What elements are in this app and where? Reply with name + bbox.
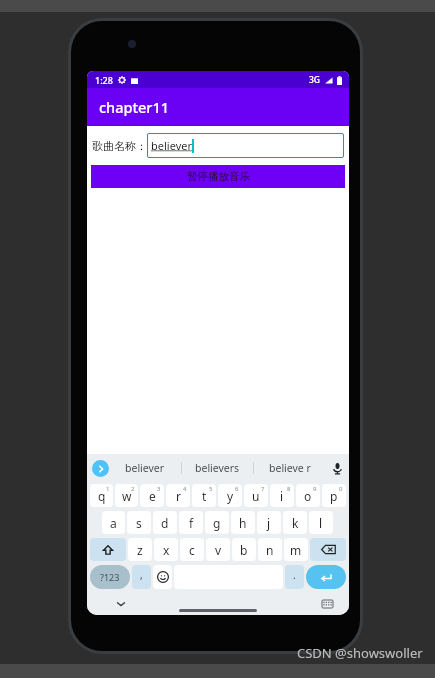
staticText: m bbox=[290, 542, 302, 558]
staticText: l bbox=[319, 515, 323, 531]
staticText: k bbox=[292, 515, 299, 531]
button[interactable]: u bbox=[244, 484, 268, 507]
staticText: believer bbox=[125, 461, 165, 475]
staticText: , bbox=[140, 568, 143, 582]
staticText: 歌曲名称： bbox=[92, 139, 147, 153]
staticText: e bbox=[149, 488, 156, 504]
button[interactable]: p bbox=[322, 484, 346, 507]
button[interactable]: j bbox=[257, 511, 281, 534]
button[interactable]: r bbox=[166, 484, 190, 507]
button[interactable]: m bbox=[284, 538, 308, 561]
staticText: r bbox=[176, 488, 181, 504]
button[interactable]: i bbox=[270, 484, 294, 507]
button[interactable]: q bbox=[90, 484, 113, 507]
staticText: believe r bbox=[269, 461, 311, 475]
button[interactable]: Period bbox=[285, 565, 304, 589]
staticText: b bbox=[240, 542, 248, 558]
button[interactable]: Backspace bbox=[310, 538, 346, 561]
staticText: believers bbox=[195, 461, 240, 475]
staticText: w bbox=[122, 488, 132, 504]
button[interactable]: believer bbox=[147, 133, 344, 158]
staticText: u bbox=[252, 488, 260, 504]
staticText: ?123 bbox=[100, 571, 120, 583]
staticText: y bbox=[227, 488, 234, 504]
button[interactable]: a bbox=[102, 511, 125, 534]
button[interactable]: d bbox=[153, 511, 177, 534]
button[interactable]: Voice input bbox=[325, 454, 349, 482]
button[interactable]: Enter bbox=[306, 565, 346, 589]
staticText: 8 bbox=[287, 485, 291, 493]
button[interactable]: Home bbox=[179, 609, 257, 612]
staticText: 9 bbox=[313, 485, 317, 493]
staticText: v bbox=[215, 542, 222, 558]
staticText: 5 bbox=[209, 485, 213, 493]
staticText: 暂停播放音乐 bbox=[187, 170, 250, 183]
button[interactable]: Emoji bbox=[153, 565, 172, 589]
staticText: a bbox=[110, 515, 117, 531]
staticText: 4 bbox=[183, 485, 187, 493]
staticText: 7 bbox=[261, 485, 265, 493]
button[interactable]: k bbox=[283, 511, 307, 534]
staticText: chapter11 bbox=[99, 97, 170, 117]
button[interactable]: s bbox=[127, 511, 151, 534]
staticText: d bbox=[161, 515, 169, 531]
button[interactable]: o bbox=[296, 484, 320, 507]
button[interactable]: Expand suggestions bbox=[92, 460, 109, 477]
button[interactable]: believers bbox=[182, 454, 253, 482]
staticText: h bbox=[239, 515, 247, 531]
button[interactable]: v bbox=[206, 538, 230, 561]
button[interactable]: l bbox=[309, 511, 333, 534]
button[interactable]: ?123 bbox=[90, 565, 130, 589]
staticText: . bbox=[293, 568, 296, 582]
button[interactable]: Shift bbox=[90, 538, 126, 561]
staticText: f bbox=[189, 515, 194, 531]
button[interactable]: h bbox=[231, 511, 255, 534]
staticText: believer bbox=[151, 138, 192, 153]
staticText: t bbox=[202, 488, 207, 504]
staticText: z bbox=[137, 542, 143, 558]
button[interactable]: Switch keyboard bbox=[319, 596, 335, 612]
button[interactable]: x bbox=[154, 538, 178, 561]
button[interactable]: y bbox=[218, 484, 242, 507]
button[interactable]: Hide keyboard bbox=[113, 596, 129, 612]
staticText: 0 bbox=[339, 485, 343, 493]
staticText: o bbox=[304, 488, 312, 504]
button[interactable]: w bbox=[115, 484, 138, 507]
staticText: j bbox=[267, 515, 271, 531]
staticText: c bbox=[189, 542, 195, 558]
button[interactable]: n bbox=[258, 538, 282, 561]
staticText: p bbox=[330, 488, 338, 504]
staticText: 1:28 bbox=[95, 74, 113, 86]
button[interactable]: b bbox=[232, 538, 256, 561]
staticText: q bbox=[98, 488, 106, 504]
staticText: n bbox=[266, 542, 274, 558]
button[interactable]: f bbox=[179, 511, 203, 534]
staticText: 3 bbox=[157, 485, 161, 493]
button[interactable]: e bbox=[140, 484, 164, 507]
button[interactable]: c bbox=[180, 538, 204, 561]
staticText: 1 bbox=[106, 485, 110, 493]
staticText: i bbox=[280, 488, 284, 504]
staticText: x bbox=[163, 542, 170, 558]
staticText: CSDN @showswoller bbox=[297, 644, 423, 662]
staticText: g bbox=[213, 515, 221, 531]
button[interactable]: believer bbox=[109, 454, 181, 482]
button[interactable]: 暂停播放音乐 bbox=[91, 165, 345, 188]
button[interactable]: z bbox=[128, 538, 152, 561]
staticText: 3G bbox=[309, 74, 321, 86]
button[interactable]: believe r bbox=[254, 454, 325, 482]
button[interactable]: Comma bbox=[132, 565, 151, 589]
button[interactable]: t bbox=[192, 484, 216, 507]
staticText: 2 bbox=[131, 485, 135, 493]
button[interactable]: g bbox=[205, 511, 229, 534]
staticText: s bbox=[136, 515, 142, 531]
staticText: 6 bbox=[235, 485, 239, 493]
